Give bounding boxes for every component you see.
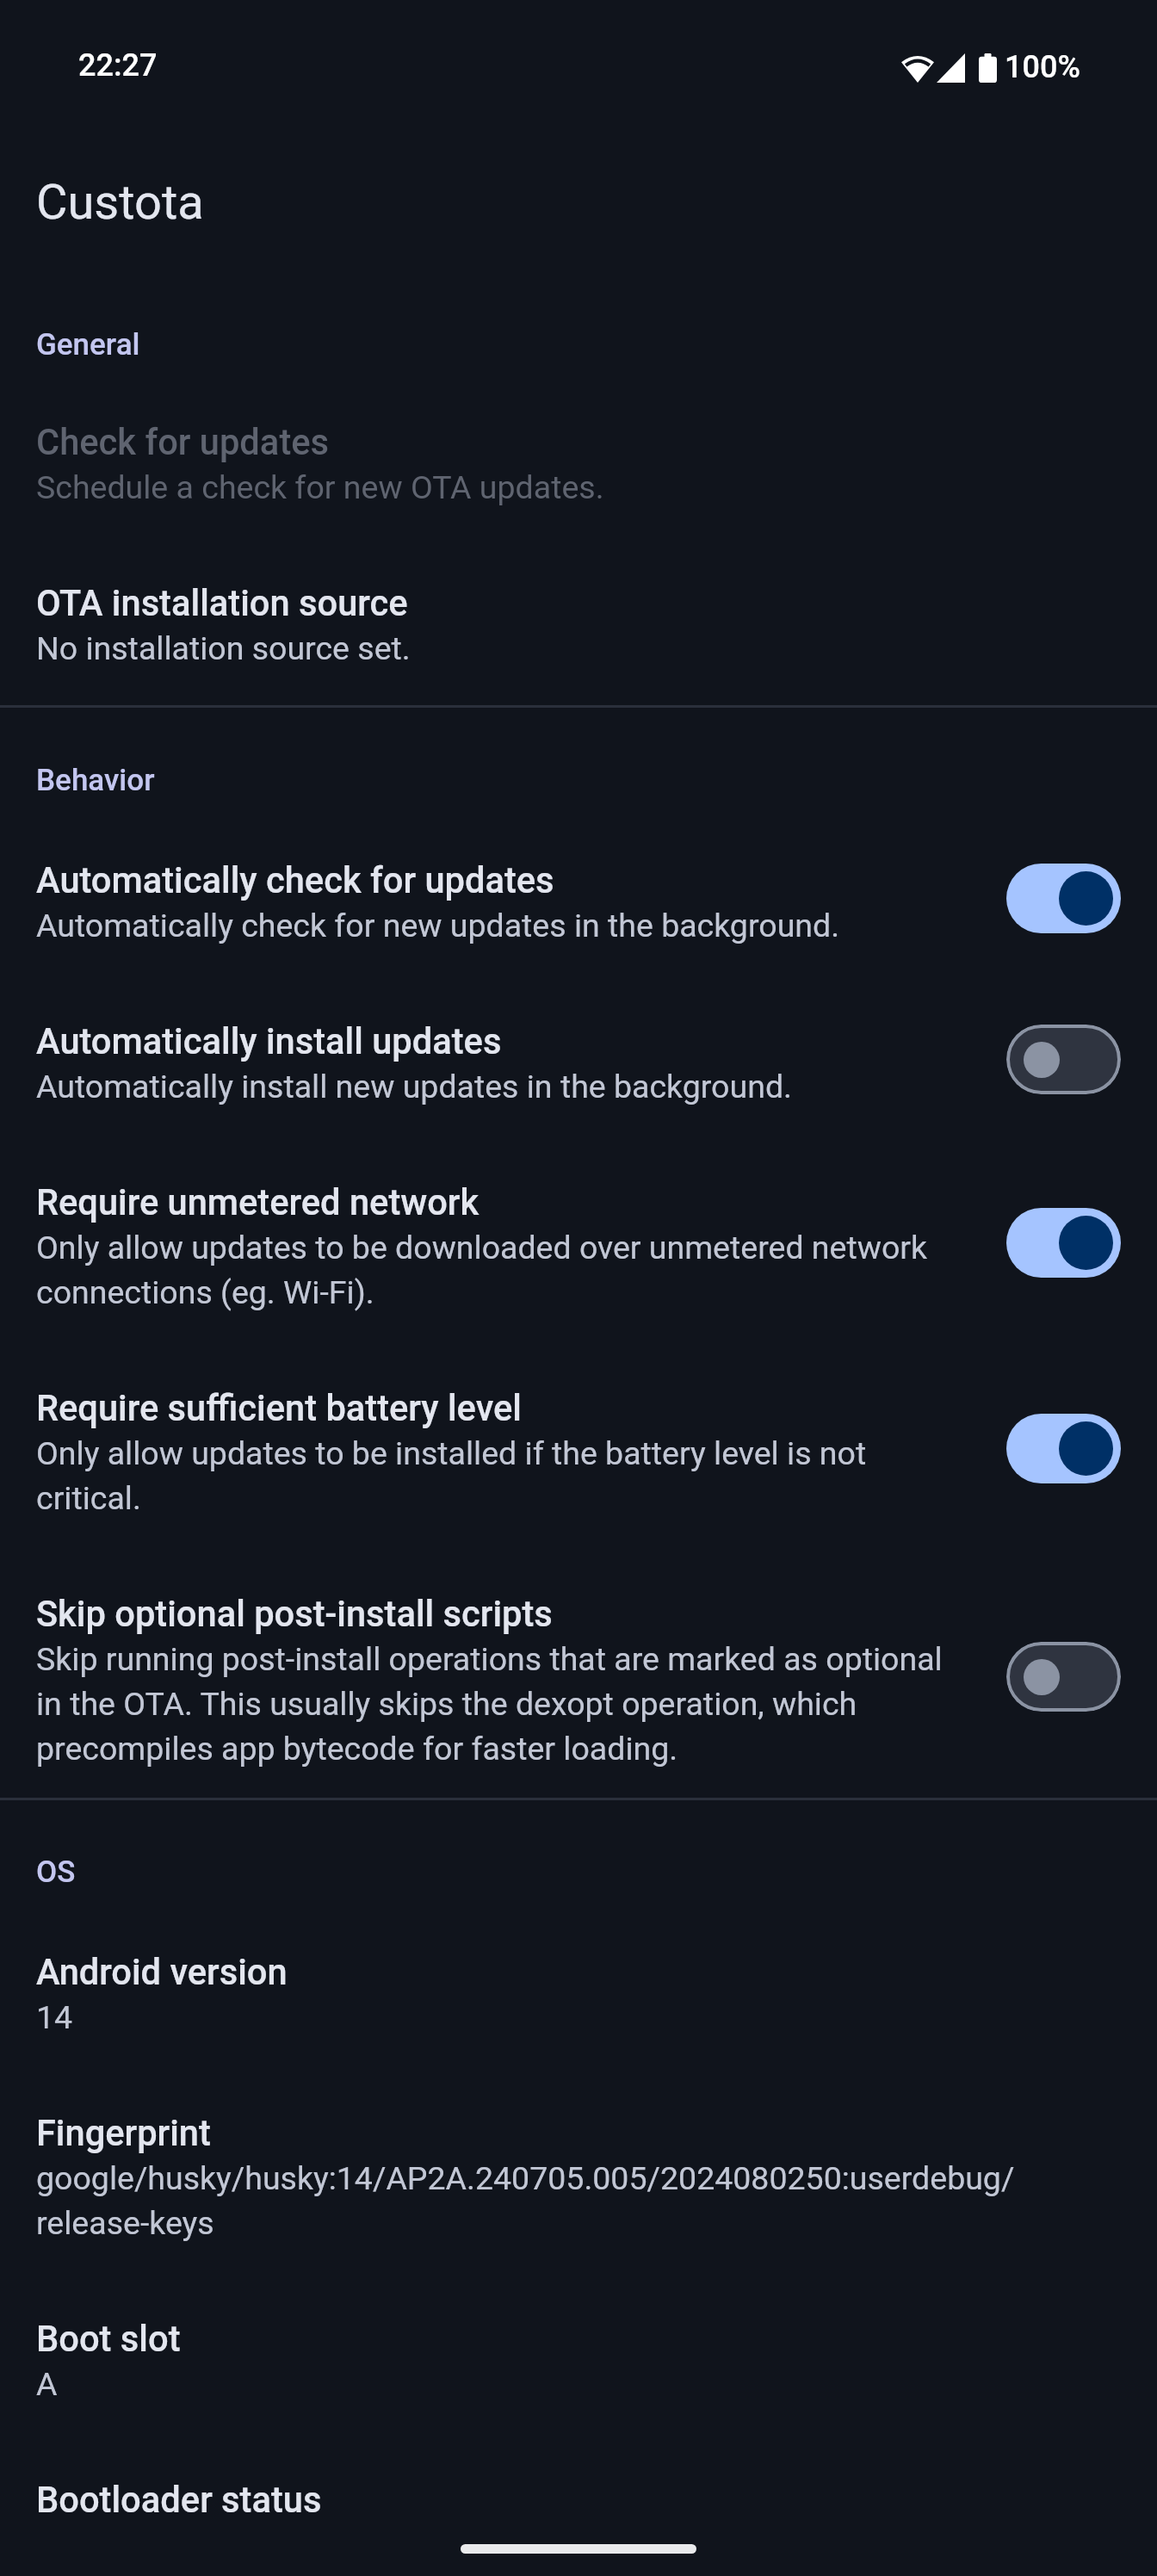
button[interactable]: Check for updates bbox=[0, 383, 1157, 544]
button[interactable]: Automatically install updates bbox=[0, 982, 1157, 1143]
staticText: 14 bbox=[36, 1993, 73, 2038]
staticText: Behavior bbox=[36, 760, 155, 798]
staticText: Require unmetered network bbox=[36, 1180, 480, 1223]
button[interactable]: Fingerprint bbox=[0, 2074, 1157, 2280]
staticText: google/husky/husky:14/AP2A.240705.005/20… bbox=[36, 2154, 1026, 2244]
staticText: 100% bbox=[1005, 49, 1080, 85]
staticText: Android version bbox=[36, 1950, 288, 1993]
staticText: Skip running post-install operations tha… bbox=[36, 1635, 944, 1769]
staticText: 22:27 bbox=[78, 47, 158, 84]
staticText: General bbox=[36, 325, 140, 362]
button[interactable]: Require sufficient battery level bbox=[0, 1349, 1157, 1555]
staticText: OS bbox=[36, 1852, 76, 1890]
button[interactable]: Require unmetered network bbox=[0, 1143, 1157, 1349]
button[interactable]: Bootloader status bbox=[0, 2441, 1157, 2557]
staticText: Only allow updates to be installed if th… bbox=[36, 1429, 944, 1519]
staticText: Fingerprint bbox=[36, 2111, 211, 2154]
staticText: Skip optional post-install scripts bbox=[36, 1592, 553, 1635]
staticText: Custota bbox=[36, 170, 204, 232]
staticText: OTA installation source bbox=[36, 581, 408, 624]
button[interactable]: Android version bbox=[0, 1913, 1157, 2074]
staticText: Only allow updates to be downloaded over… bbox=[36, 1223, 944, 1313]
staticText: Require sufficient battery level bbox=[36, 1386, 522, 1429]
staticText: No installation source set. bbox=[36, 624, 411, 669]
staticText: Schedule a check for new OTA updates. bbox=[36, 463, 604, 508]
staticText: Check for updates bbox=[36, 420, 330, 463]
staticText: Automatically check for new updates in t… bbox=[36, 901, 840, 946]
button[interactable]: Boot slot bbox=[0, 2280, 1157, 2441]
button[interactable]: Automatically check for updates bbox=[0, 821, 1157, 982]
button[interactable]: Skip optional post-install scripts bbox=[0, 1555, 1157, 1798]
staticText: Automatically check for updates bbox=[36, 858, 554, 901]
button[interactable]: OTA installation source bbox=[0, 544, 1157, 705]
staticText: Automatically install new updates in the… bbox=[36, 1062, 792, 1107]
staticText: Automatically install updates bbox=[36, 1019, 502, 1062]
staticText: Boot slot bbox=[36, 2317, 181, 2360]
staticText: A bbox=[36, 2360, 58, 2405]
staticText: Bootloader status bbox=[36, 2478, 322, 2521]
